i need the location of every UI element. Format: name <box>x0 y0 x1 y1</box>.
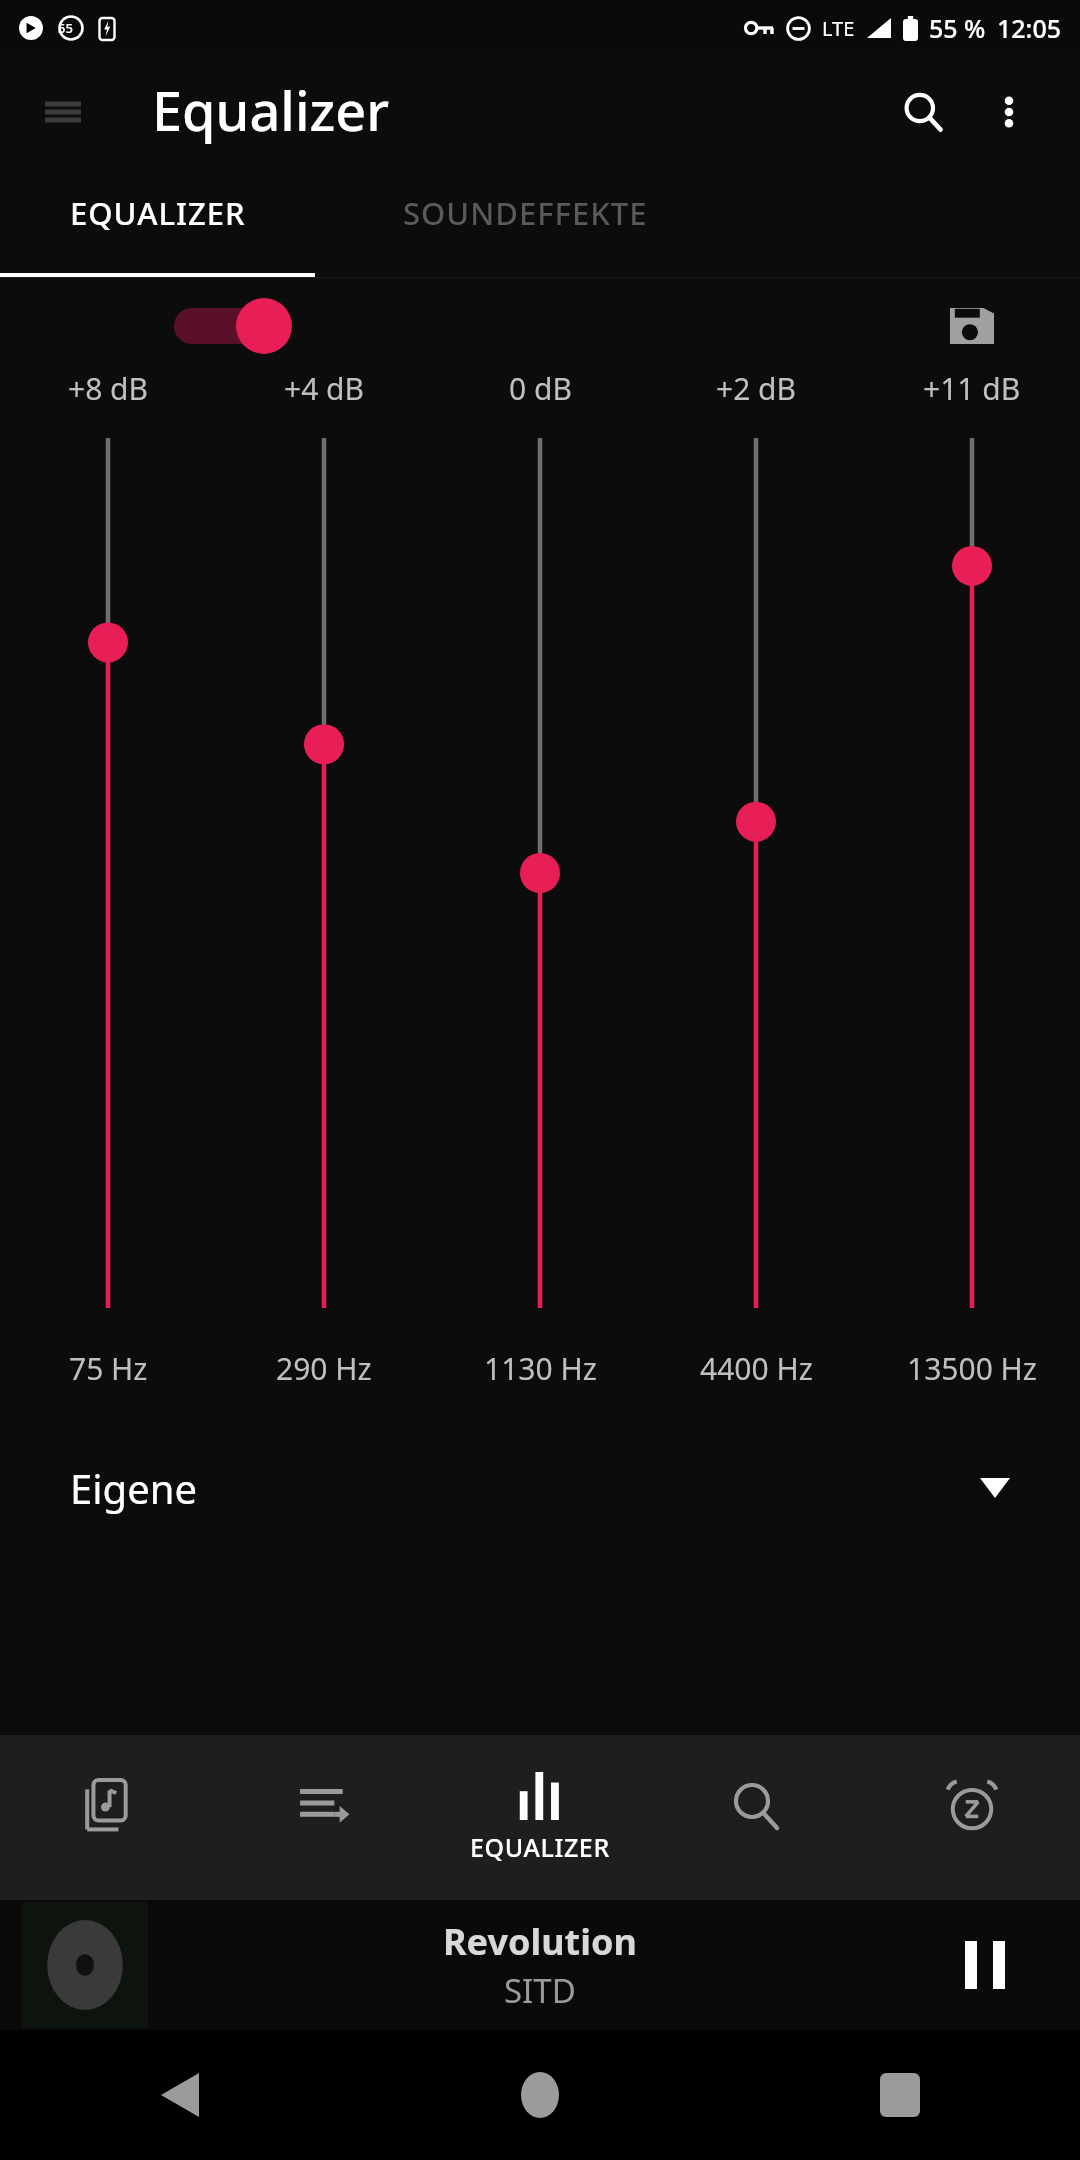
staticText: +2 dB <box>716 368 797 409</box>
button[interactable] <box>0 438 216 1308</box>
button[interactable]: Search <box>880 69 966 155</box>
button[interactable]: Menu <box>40 89 86 135</box>
staticText: SITD <box>504 1968 576 2013</box>
staticText: +11 dB <box>923 368 1021 409</box>
button[interactable]: SOUNDEFFEKTE <box>315 168 735 278</box>
button[interactable]: More options <box>966 69 1052 155</box>
staticText: 4400 Hz <box>700 1348 813 1389</box>
staticText: LTE <box>822 15 855 42</box>
button[interactable] <box>216 438 432 1308</box>
button[interactable] <box>432 438 648 1308</box>
staticText: 1130 Hz <box>484 1348 597 1389</box>
staticText: 75 Hz <box>69 1348 148 1389</box>
staticText: EQUALIZER <box>470 1830 610 1864</box>
button[interactable] <box>648 438 864 1308</box>
staticText: EQUALIZER <box>70 192 246 234</box>
staticText: +4 dB <box>284 368 365 409</box>
button[interactable]: Enable equalizer <box>168 286 318 366</box>
button[interactable]: Home <box>360 2030 720 2160</box>
button[interactable]: Sleep timer <box>864 1735 1080 1900</box>
button[interactable]: Eigene <box>0 1433 1080 1543</box>
button[interactable]: Pause <box>940 1920 1030 2010</box>
staticText: SOUNDEFFEKTE <box>403 192 648 234</box>
staticText: 13500 Hz <box>907 1348 1037 1389</box>
staticText: 12:05 <box>997 11 1062 45</box>
button[interactable]: Back <box>0 2030 360 2160</box>
staticText: 0 dB <box>509 368 572 409</box>
button[interactable] <box>864 438 1080 1308</box>
button[interactable]: Revolution <box>0 1900 1080 2030</box>
button[interactable]: Save preset <box>932 286 1012 366</box>
staticText: +8 dB <box>68 368 149 409</box>
staticText: 55 <box>58 19 73 37</box>
button[interactable]: Queue <box>216 1735 432 1900</box>
staticText: Eigene <box>70 1461 197 1515</box>
button[interactable]: EQUALIZER <box>0 168 315 278</box>
staticText: 290 Hz <box>276 1348 372 1389</box>
button[interactable]: EQUALIZER <box>432 1735 648 1900</box>
button[interactable]: Search <box>648 1735 864 1900</box>
staticText: Revolution <box>443 1917 637 1966</box>
staticText: 55 % <box>929 11 986 45</box>
staticText: Equalizer <box>152 73 390 147</box>
button[interactable]: Library <box>0 1735 216 1900</box>
button[interactable]: Recents <box>720 2030 1080 2160</box>
